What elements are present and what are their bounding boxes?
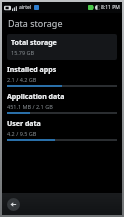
staticText: Installed apps bbox=[7, 65, 57, 75]
staticText: 4.2 / 9.5 GB bbox=[7, 130, 37, 137]
staticText: User data bbox=[7, 119, 41, 129]
staticText: 451.1 MB / 2.1 GB bbox=[7, 103, 53, 110]
button[interactable]: Application data bbox=[2, 92, 122, 114]
button[interactable]: Back bbox=[7, 198, 20, 211]
button[interactable]: User data bbox=[2, 119, 122, 141]
staticText: Data storage bbox=[8, 17, 63, 29]
staticText: airtel bbox=[19, 4, 32, 11]
button[interactable]: Total storage bbox=[7, 34, 117, 60]
staticText: Total storage bbox=[11, 38, 57, 48]
button[interactable]: Installed apps bbox=[2, 65, 122, 87]
staticText: 2.1 / 4.2 GB bbox=[7, 76, 37, 83]
staticText: 8:11 PM bbox=[101, 4, 120, 11]
staticText: 15.79 GB bbox=[11, 49, 35, 56]
staticText: Application data bbox=[7, 92, 65, 102]
